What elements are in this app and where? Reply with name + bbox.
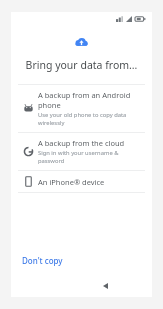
staticText: An iPhone® device bbox=[38, 177, 105, 187]
other: Android phone bbox=[23, 103, 34, 114]
staticText: Bring your data from… bbox=[11, 58, 152, 72]
button[interactable]: Google account bbox=[11, 133, 152, 170]
button[interactable]: Android phone bbox=[11, 85, 152, 132]
other: Google account bbox=[23, 146, 34, 157]
staticText: A backup from an Android phone bbox=[38, 90, 145, 110]
button[interactable]: iPhone device bbox=[11, 171, 152, 192]
other: iPhone device bbox=[23, 176, 34, 187]
other: Cloud backup bbox=[74, 34, 89, 49]
staticText: A backup from the cloud bbox=[38, 138, 125, 148]
staticText: Use your old phone to copy data wireless… bbox=[38, 111, 145, 127]
button[interactable]: Back bbox=[98, 279, 112, 293]
button[interactable]: Don't copy bbox=[18, 252, 67, 269]
staticText: Sign in with your username & password bbox=[38, 149, 145, 165]
staticText: Don't copy bbox=[22, 255, 63, 266]
